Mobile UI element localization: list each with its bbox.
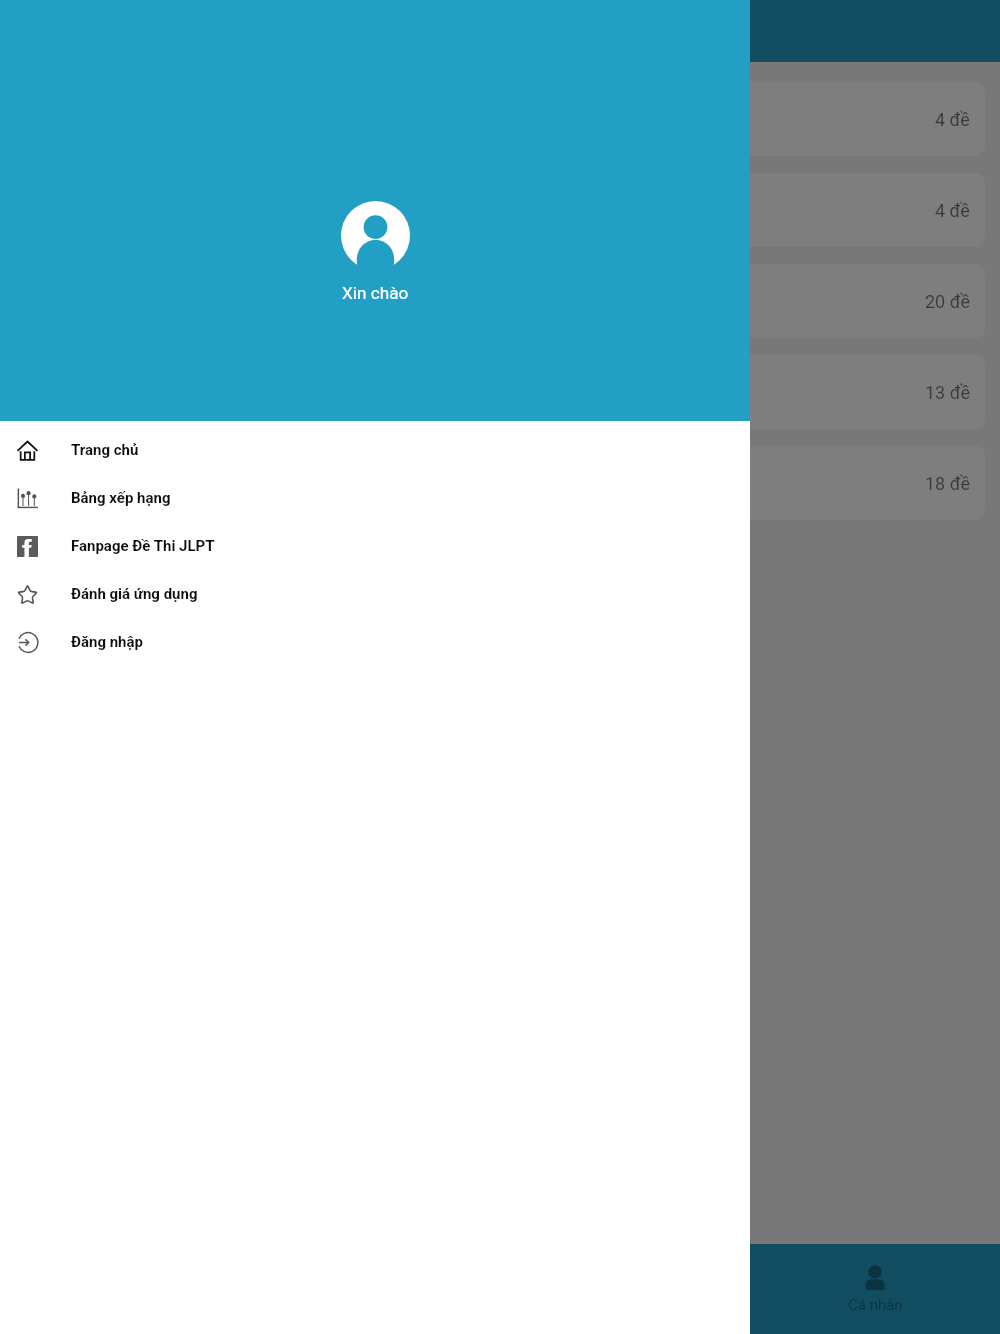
- staticText: Xin chào: [342, 283, 409, 303]
- staticText: Cá nhân: [848, 1296, 903, 1314]
- staticText: 18 đề: [925, 473, 970, 494]
- staticText: Fanpage Đề Thi JLPT: [71, 537, 215, 555]
- button[interactable]: Fanpage Đề Thi JLPT: [0, 522, 750, 570]
- staticText: 13 đề: [925, 382, 970, 403]
- staticText: Đánh giá ứng dụng: [71, 585, 198, 603]
- button[interactable]: Bảng xếp hạng: [0, 474, 750, 522]
- button[interactable]: Cá nhân: [750, 1244, 1000, 1334]
- staticText: 4 đề: [935, 200, 970, 221]
- button[interactable]: 18 đề: [15, 446, 985, 520]
- button[interactable]: Trang chủ: [0, 426, 750, 474]
- staticText: 4 đề: [935, 109, 970, 130]
- staticText: Bảng xếp hạng: [71, 489, 171, 507]
- button[interactable]: 4 đề: [15, 173, 985, 247]
- staticText: Đăng nhập: [71, 633, 143, 651]
- staticText: Trang chủ: [71, 441, 139, 459]
- button[interactable]: Đánh giá ứng dụng: [0, 570, 750, 618]
- button[interactable]: 20 đề: [15, 264, 985, 338]
- button[interactable]: 4 đề: [15, 82, 985, 156]
- staticText: 20 đề: [925, 291, 970, 312]
- button[interactable]: 13 đề: [15, 355, 985, 429]
- button[interactable]: Đăng nhập: [0, 618, 750, 666]
